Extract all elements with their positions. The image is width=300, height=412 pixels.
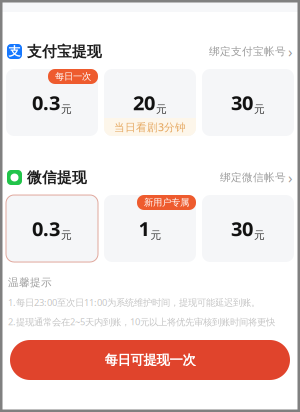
staticText: › bbox=[288, 168, 293, 187]
staticText: 微信提现 bbox=[27, 168, 87, 186]
staticText: 温馨提示 bbox=[8, 276, 52, 289]
staticText: 支付宝提现 bbox=[27, 42, 102, 60]
staticText: 元 bbox=[156, 103, 167, 116]
staticText: 元 bbox=[254, 229, 265, 242]
staticText: 0.3 bbox=[32, 89, 60, 116]
button[interactable]: 绑定微信帐号 bbox=[220, 168, 293, 187]
button[interactable]: 0.3 bbox=[6, 195, 98, 262]
staticText: 支 bbox=[8, 44, 20, 59]
staticText: 元 bbox=[61, 229, 72, 242]
staticText: 绑定微信帐号 bbox=[220, 171, 286, 184]
staticText: 每日一次 bbox=[55, 71, 91, 82]
staticText: 2.提现通常会在2~5天内到账，10元以上将优先审核到账时间将更快 bbox=[8, 315, 275, 328]
staticText: 0.3 bbox=[32, 215, 60, 242]
staticText: 新用户专属 bbox=[144, 197, 189, 208]
staticText: 元 bbox=[254, 103, 265, 116]
button[interactable]: 30 bbox=[202, 195, 294, 262]
staticText: 20 bbox=[133, 89, 155, 116]
staticText: 30 bbox=[231, 215, 253, 242]
staticText: 元 bbox=[150, 229, 161, 242]
staticText: 当日看剧3分钟 bbox=[114, 120, 186, 134]
button[interactable]: 1 bbox=[104, 195, 196, 262]
staticText: 元 bbox=[61, 103, 72, 116]
button[interactable]: 0.3 bbox=[6, 69, 98, 136]
button[interactable]: 20 bbox=[104, 69, 196, 136]
staticText: 每日可提现一次 bbox=[104, 352, 195, 368]
button[interactable]: 每日可提现一次 bbox=[10, 340, 290, 380]
staticText: › bbox=[288, 42, 293, 61]
button[interactable]: 绑定支付宝帐号 bbox=[209, 42, 293, 61]
staticText: 绑定支付宝帐号 bbox=[209, 45, 286, 58]
staticText: 1.每日23:00至次日11:00为系统维护时间，提现可能延迟到账。 bbox=[8, 296, 260, 308]
button[interactable]: 30 bbox=[202, 69, 294, 136]
staticText: 30 bbox=[231, 89, 253, 116]
staticText: 1 bbox=[138, 215, 149, 242]
